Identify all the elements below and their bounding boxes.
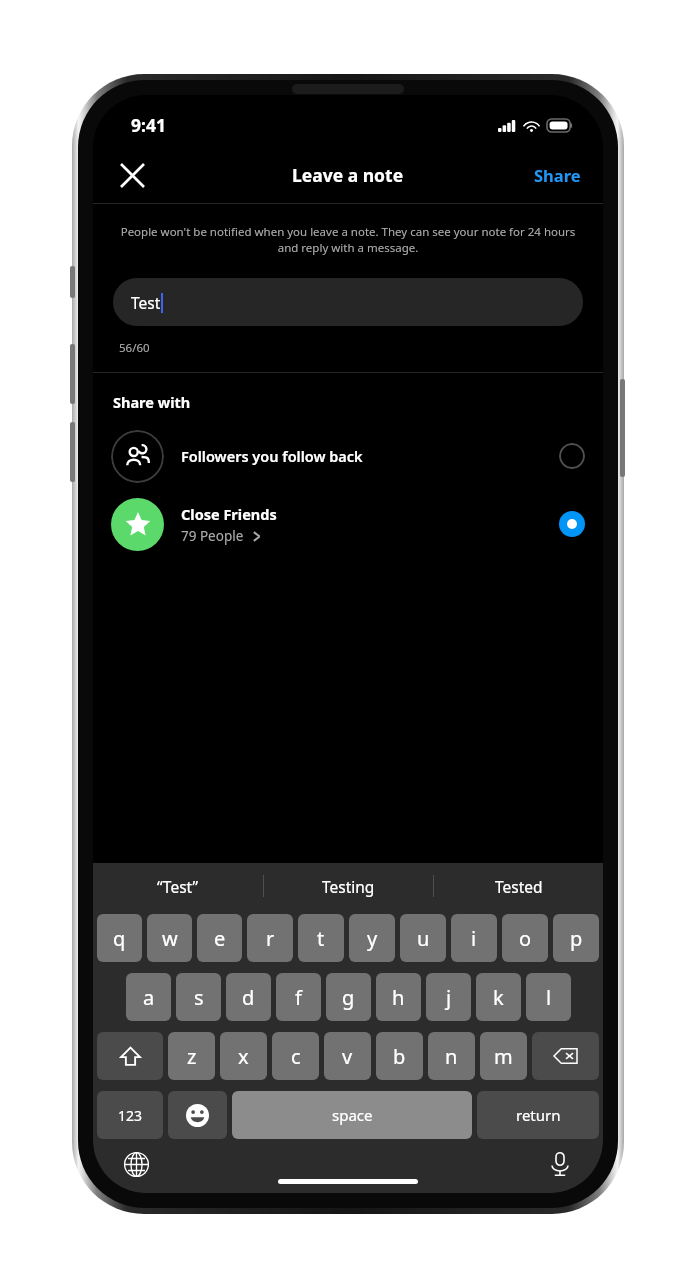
staticText: Test [131, 292, 161, 313]
button[interactable]: g [326, 973, 371, 1021]
button[interactable]: s [176, 973, 221, 1021]
button[interactable]: l [526, 973, 571, 1021]
staticText: d [242, 984, 255, 1011]
button[interactable]: Followers you follow back [93, 425, 603, 487]
button[interactable]: m [480, 1032, 527, 1080]
button[interactable]: c [272, 1032, 319, 1080]
staticText: “Test” [157, 876, 199, 897]
staticText: g [342, 984, 355, 1011]
button[interactable]: y [349, 914, 395, 962]
staticText: u [417, 925, 430, 952]
staticText: w [162, 925, 178, 952]
staticText: j [446, 984, 452, 1011]
staticText: Share with [113, 392, 191, 412]
button[interactable]: Emoji [168, 1091, 227, 1139]
staticText: 123 [118, 1106, 143, 1125]
button[interactable]: “Test” [93, 863, 263, 909]
staticText: 9:41 [131, 113, 166, 137]
button[interactable]: t [298, 914, 344, 962]
button[interactable]: u [400, 914, 446, 962]
staticText: Share [534, 164, 581, 186]
button[interactable]: Share [524, 154, 591, 196]
button[interactable]: w [147, 914, 192, 962]
staticText: v [342, 1043, 353, 1070]
staticText: 56/60 [119, 340, 150, 356]
button[interactable]: b [376, 1032, 423, 1080]
staticText: Followers you follow back [181, 446, 363, 466]
staticText: h [392, 984, 405, 1011]
button[interactable]: Test [113, 278, 583, 326]
button[interactable]: return [477, 1091, 599, 1139]
staticText: t [317, 925, 325, 952]
button[interactable]: q [97, 914, 142, 962]
button[interactable]: f [276, 973, 321, 1021]
staticText: f [295, 984, 302, 1011]
staticText: q [113, 925, 126, 952]
button[interactable]: k [476, 973, 521, 1021]
button[interactable]: n [428, 1032, 475, 1080]
staticText: People won't be notified when you leave … [117, 224, 579, 256]
staticText: s [194, 984, 204, 1011]
staticText: a [143, 984, 155, 1011]
staticText: c [291, 1043, 301, 1070]
button[interactable]: Testing [264, 863, 433, 909]
button[interactable]: Close [109, 152, 155, 198]
staticText: Leave a note [292, 163, 404, 187]
button[interactable]: Change keyboard [119, 1147, 153, 1181]
staticText: return [516, 1105, 561, 1125]
button[interactable]: r [247, 914, 293, 962]
button[interactable]: h [376, 973, 421, 1021]
staticText: b [393, 1043, 406, 1070]
button[interactable]: Backspace [532, 1032, 599, 1080]
staticText: space [332, 1105, 373, 1125]
staticText: x [238, 1043, 249, 1070]
button[interactable]: space [232, 1091, 472, 1139]
staticText: y [367, 925, 378, 952]
staticText: l [546, 984, 552, 1011]
staticText: Close Friends [181, 504, 277, 524]
button[interactable]: i [451, 914, 497, 962]
button[interactable]: z [168, 1032, 215, 1080]
button[interactable]: v [324, 1032, 371, 1080]
staticText: 79 People [181, 527, 244, 545]
staticText: i [471, 925, 477, 952]
staticText: r [266, 925, 275, 952]
staticText: m [494, 1043, 513, 1070]
staticText: n [445, 1043, 458, 1070]
button[interactable]: 123 [97, 1091, 163, 1139]
button[interactable]: j [426, 973, 471, 1021]
staticText: Testing [322, 876, 375, 897]
button[interactable]: x [220, 1032, 267, 1080]
staticText: k [493, 984, 504, 1011]
button[interactable]: d [226, 973, 271, 1021]
staticText: p [570, 925, 583, 952]
button[interactable]: Tested [434, 863, 603, 909]
staticText: Tested [495, 876, 543, 897]
button[interactable]: Close Friends [93, 493, 603, 555]
staticText: o [519, 925, 532, 952]
button[interactable]: Shift [97, 1032, 163, 1080]
staticText: e [214, 925, 226, 952]
button[interactable]: e [197, 914, 242, 962]
staticText: z [187, 1043, 197, 1070]
button[interactable]: Dictation [543, 1147, 577, 1181]
button[interactable]: p [553, 914, 599, 962]
button[interactable]: o [502, 914, 548, 962]
button[interactable]: a [126, 973, 171, 1021]
